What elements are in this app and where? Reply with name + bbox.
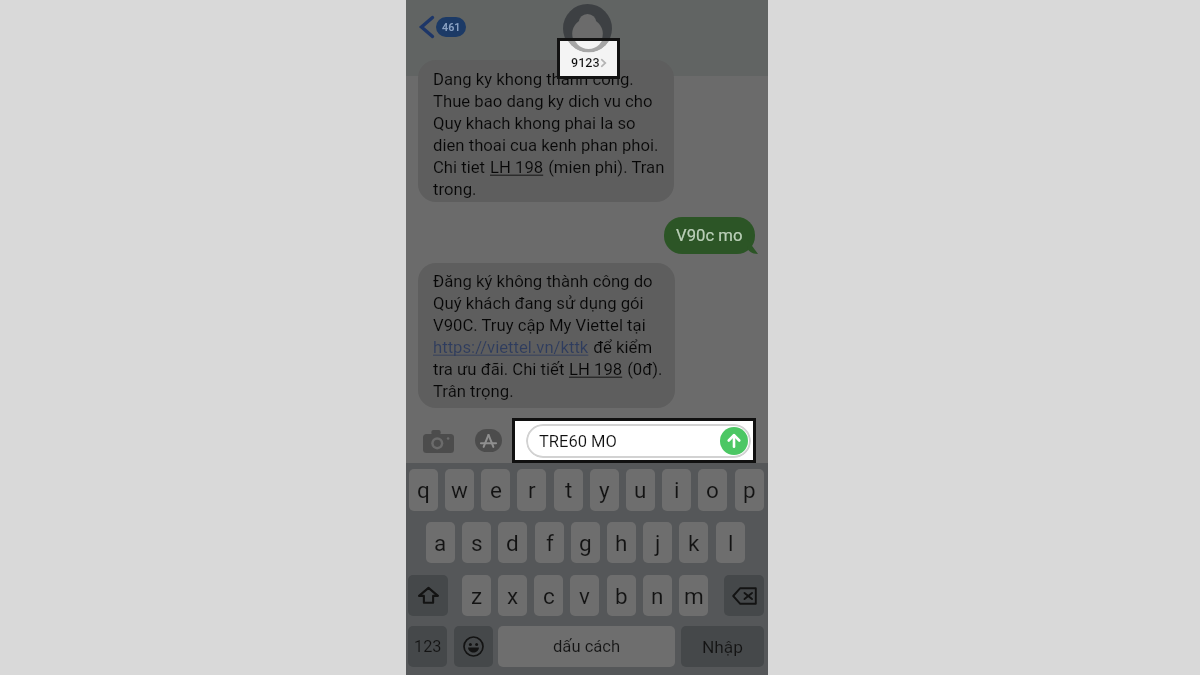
- staticText: x: [507, 583, 519, 609]
- button[interactable]: h: [607, 522, 636, 563]
- staticText: (0đ).: [623, 360, 663, 380]
- button[interactable]: a: [426, 522, 455, 563]
- staticText: (mien phi). Tran: [544, 158, 665, 178]
- staticText: Quy khach khong phai la so: [433, 114, 636, 134]
- staticText: n: [651, 583, 664, 609]
- staticText: dien thoai cua kenh phan phoi.: [433, 136, 659, 156]
- staticText: a: [434, 530, 447, 556]
- button[interactable]: 9123: [557, 38, 620, 79]
- staticText: m: [684, 583, 704, 609]
- button[interactable]: Back: [417, 13, 469, 41]
- button[interactable]: v: [570, 575, 599, 616]
- button[interactable]: m: [679, 575, 708, 616]
- staticText: LH 198: [490, 158, 544, 178]
- staticText: i: [674, 477, 680, 503]
- button[interactable]: n: [643, 575, 672, 616]
- staticText: o: [706, 477, 719, 503]
- staticText: d: [506, 530, 519, 556]
- staticText: b: [615, 583, 628, 609]
- staticText: TRE60 MO: [539, 432, 617, 451]
- staticText: l: [728, 530, 734, 556]
- staticText: Quý khách đang sử dụng gói: [433, 294, 644, 314]
- button[interactable]: y: [590, 469, 619, 511]
- button[interactable]: c: [534, 575, 563, 616]
- button[interactable]: Nhập: [681, 626, 764, 667]
- button[interactable]: b: [607, 575, 636, 616]
- staticText: f: [546, 530, 554, 556]
- staticText: 9123: [571, 55, 600, 70]
- button[interactable]: d: [498, 522, 527, 563]
- staticText: Thue bao dang ky dich vu cho: [433, 92, 653, 112]
- button[interactable]: f: [535, 522, 564, 563]
- staticText: k: [688, 530, 700, 556]
- staticText: tra ưu đãi. Chi tiết: [433, 360, 569, 380]
- staticText: s: [471, 530, 483, 556]
- button[interactable]: 123: [408, 626, 447, 667]
- staticText: https://viettel.vn/kttk: [433, 338, 589, 358]
- staticText: Chi tiet: [433, 158, 490, 178]
- staticText: q: [417, 477, 430, 503]
- button[interactable]: p: [735, 469, 764, 511]
- staticText: Trân trọng.: [433, 382, 514, 402]
- button[interactable]: Send: [720, 427, 748, 455]
- button[interactable]: TRE60 MO: [526, 424, 751, 458]
- staticText: Nhập: [702, 637, 743, 657]
- button[interactable]: V90c mo: [664, 217, 755, 254]
- staticText: V90C. Truy cập My Viettel tại: [433, 316, 646, 336]
- staticText: w: [451, 477, 468, 503]
- staticText: LH 198: [569, 360, 623, 380]
- button[interactable]: [418, 263, 675, 408]
- button[interactable]: l: [716, 522, 745, 563]
- staticText: e: [490, 477, 502, 503]
- button[interactable]: [418, 60, 674, 202]
- button[interactable]: e: [481, 469, 510, 511]
- button[interactable]: z: [462, 575, 491, 616]
- button[interactable]: q: [409, 469, 438, 511]
- staticText: để kiểm: [589, 338, 653, 358]
- button[interactable]: o: [698, 469, 727, 511]
- staticText: v: [579, 583, 590, 609]
- staticText: trong.: [433, 180, 477, 200]
- button[interactable]: g: [571, 522, 600, 563]
- button[interactable]: j: [643, 522, 672, 563]
- staticText: Đăng ký không thành công do: [433, 272, 653, 292]
- staticText: j: [655, 530, 661, 556]
- button[interactable]: Camera: [418, 421, 458, 461]
- button[interactable]: u: [626, 469, 655, 511]
- button[interactable]: w: [445, 469, 474, 511]
- staticText: r: [528, 477, 536, 503]
- button[interactable]: Backspace: [724, 575, 764, 616]
- staticText: c: [543, 583, 555, 609]
- button[interactable]: Emoji: [454, 626, 493, 667]
- button[interactable]: k: [679, 522, 708, 563]
- button[interactable]: i: [662, 469, 691, 511]
- button[interactable]: s: [462, 522, 491, 563]
- staticText: p: [743, 477, 756, 503]
- staticText: dấu cách: [553, 637, 621, 656]
- button[interactable]: x: [498, 575, 527, 616]
- button[interactable]: dấu cách: [498, 626, 675, 667]
- staticText: 123: [414, 637, 442, 656]
- button[interactable]: t: [554, 469, 583, 511]
- button[interactable]: Shift: [408, 575, 448, 616]
- staticText: 461: [442, 21, 461, 34]
- staticText: z: [471, 583, 483, 609]
- button[interactable]: r: [517, 469, 546, 511]
- staticText: y: [599, 477, 610, 503]
- staticText: Dang ky khong thanh cong.: [433, 70, 634, 90]
- staticText: u: [634, 477, 647, 503]
- staticText: V90c mo: [676, 226, 743, 246]
- staticText: h: [615, 530, 628, 556]
- button[interactable]: App Store: [470, 423, 507, 457]
- staticText: g: [579, 530, 592, 556]
- staticText: t: [565, 477, 573, 503]
